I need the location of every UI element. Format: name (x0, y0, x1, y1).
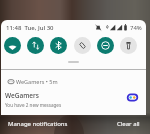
button[interactable]: Do not disturb (97, 37, 114, 54)
staticText: WeGamers • 5m (16, 78, 58, 85)
button[interactable]: Auto-rotate (74, 37, 91, 54)
staticText: 74% (130, 24, 142, 32)
button[interactable]: Wi-Fi (4, 37, 21, 54)
staticText: Clear all (117, 120, 140, 128)
staticText: You have 2 new messages (5, 102, 62, 108)
button[interactable]: Manage notifications (4, 117, 72, 130)
staticText: 11:48 Tue, Jul 30 (6, 24, 54, 32)
staticText: Manage notifications (8, 120, 68, 128)
button[interactable]: Clear all (112, 117, 145, 130)
button[interactable]: Bluetooth (50, 37, 67, 54)
button[interactable]: Mobile data (27, 37, 44, 54)
button[interactable]: WeGamers • 5m (1, 70, 146, 115)
staticText: WeGamers (5, 91, 39, 100)
button[interactable]: Flashlight (120, 37, 137, 54)
